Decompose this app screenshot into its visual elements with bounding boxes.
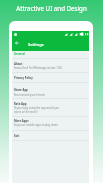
staticText: Enjoy our mobile apps to play, share xyxy=(14,123,59,127)
staticText: rate it on the store? xyxy=(14,110,38,114)
button[interactable]: Back xyxy=(13,39,21,47)
staticText: Recommend your friends xyxy=(14,93,45,97)
button[interactable] xyxy=(12,99,89,112)
staticText: Status Devil For Whatsapp version 1.0.0 xyxy=(14,66,62,70)
staticText: Attractive UI and Design xyxy=(0,4,103,12)
staticText: Privacy Policy xyxy=(14,76,33,80)
staticText: Rate App xyxy=(14,102,27,106)
staticText: More Apps xyxy=(14,119,29,123)
staticText: Share App xyxy=(14,88,28,92)
button[interactable] xyxy=(12,85,89,98)
staticText: Exit xyxy=(14,134,20,138)
button[interactable] xyxy=(12,130,89,139)
button[interactable] xyxy=(12,58,89,71)
button[interactable] xyxy=(12,116,89,129)
button[interactable] xyxy=(12,72,89,81)
staticText: Settings xyxy=(28,42,44,47)
staticText: General xyxy=(14,52,25,56)
staticText: About xyxy=(14,62,23,66)
staticText: If you enjoy using the app would you xyxy=(14,106,59,110)
